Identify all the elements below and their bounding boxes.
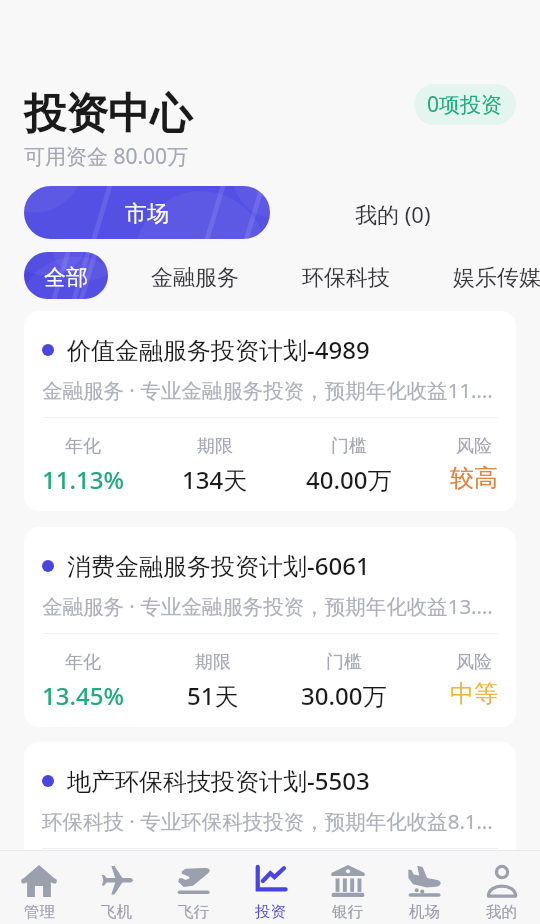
staticText: 我的 (486, 902, 517, 922)
staticText: 门槛 (322, 866, 358, 889)
staticText: 市场 (125, 200, 169, 228)
staticText: 银行 (332, 902, 363, 922)
button[interactable]: 价值金融服务投资计划-4989 (24, 311, 516, 511)
staticText: 期限 (186, 866, 222, 889)
button[interactable]: 我的 (463, 853, 540, 922)
button[interactable]: 银行 (309, 853, 386, 922)
staticText: 51天 (187, 679, 239, 712)
staticText: 投资中心 (24, 88, 192, 141)
button[interactable]: 0项投资 (414, 84, 516, 125)
button[interactable]: 娱乐传媒 (433, 252, 540, 299)
staticText: 金融服务 · 专业金融服务投资，预期年化收益11.13% (42, 376, 498, 404)
other: 机场 (408, 865, 442, 897)
button[interactable]: 飞行 (155, 853, 232, 922)
staticText: 机场 (409, 902, 440, 922)
staticText: 20.00万 (297, 894, 383, 924)
staticText: 地产环保科技投资计划-5503 (67, 764, 370, 797)
staticText: 期限 (197, 435, 233, 458)
staticText: 40.00万 (306, 463, 392, 496)
staticText: 门槛 (331, 435, 367, 458)
staticText: 环保科技 (302, 264, 390, 292)
staticText: 管理 (24, 902, 55, 922)
staticText: 较高 (450, 463, 498, 493)
button[interactable]: 消费金融服务投资计划-6061 (24, 527, 516, 727)
staticText: 环保科技 · 专业环保科技投资，预期年化收益8.12% (42, 807, 498, 835)
staticText: 期限 (195, 651, 231, 674)
staticText: 年化 (65, 435, 101, 458)
staticText: 价值金融服务投资计划-4989 (67, 333, 370, 366)
button[interactable]: 地产环保科技投资计划-5503 (24, 742, 516, 924)
button[interactable]: 市场 (24, 186, 270, 239)
staticText: 0项投资 (427, 90, 503, 119)
other: 飞机 (100, 865, 134, 897)
staticText: 30.00万 (301, 679, 387, 712)
button[interactable]: 金融服务 (131, 252, 259, 299)
button[interactable]: 管理 (0, 853, 78, 922)
staticText: 飞机 (101, 902, 132, 922)
staticText: 可用资金 80.00万 (24, 142, 189, 171)
staticText: 较低 (450, 894, 498, 924)
button[interactable]: 飞机 (78, 853, 155, 922)
other: 银行 (331, 865, 365, 897)
staticText: 投资 (255, 902, 286, 922)
staticText: 风险 (456, 866, 492, 889)
button[interactable]: 环保科技 (282, 252, 410, 299)
staticText: 13.45% (42, 679, 124, 712)
staticText: 134天 (182, 463, 248, 496)
other: 飞行 (177, 865, 211, 897)
staticText: 我的 (0) (355, 199, 431, 229)
staticText: 飞行 (178, 902, 209, 922)
staticText: 全部 (44, 264, 88, 292)
other: 管理 (22, 865, 56, 897)
staticText: 90天 (178, 894, 230, 924)
staticText: 门槛 (326, 651, 362, 674)
staticText: 风险 (456, 435, 492, 458)
other: 投资 (254, 865, 288, 897)
button[interactable]: 机场 (386, 853, 463, 922)
staticText: 金融服务 (151, 264, 239, 292)
staticText: 11.13% (42, 463, 124, 496)
staticText: 消费金融服务投资计划-6061 (67, 549, 370, 582)
staticText: 风险 (456, 651, 492, 674)
staticText: 金融服务 · 专业金融服务投资，预期年化收益13.45% (42, 592, 498, 620)
staticText: 中等 (450, 679, 498, 709)
other: 我的 (485, 865, 519, 897)
staticText: 年化 (65, 651, 101, 674)
button[interactable]: 我的 (0) (270, 186, 516, 239)
button[interactable]: 全部 (24, 252, 108, 299)
staticText: 娱乐传媒 (453, 264, 540, 292)
button[interactable]: 投资 (232, 853, 309, 922)
staticText: 8.12% (42, 894, 111, 924)
